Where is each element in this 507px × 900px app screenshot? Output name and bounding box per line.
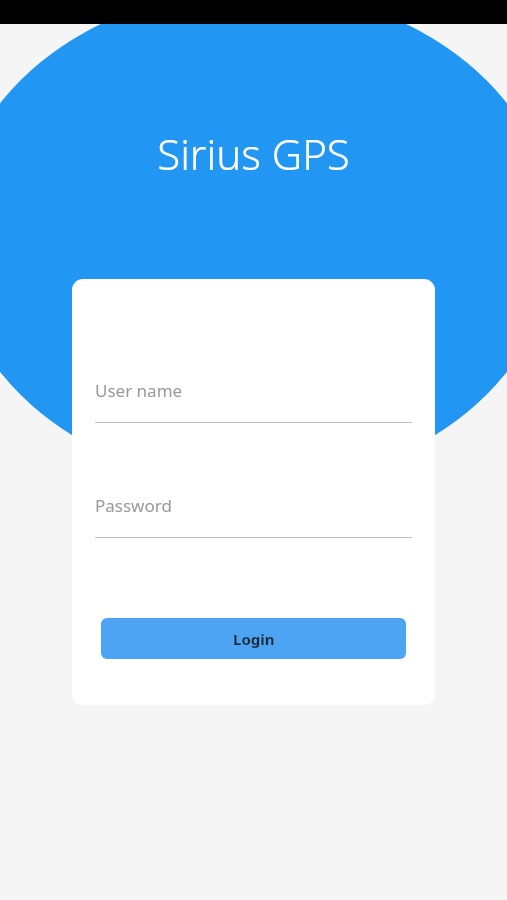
staticText: Sirius GPS <box>157 125 350 182</box>
staticText: Password <box>95 494 172 517</box>
button[interactable]: Password <box>95 494 412 550</box>
button[interactable]: User name <box>95 379 412 435</box>
button[interactable]: Login <box>101 618 406 659</box>
staticText: User name <box>95 379 183 402</box>
staticText: Login <box>233 629 275 649</box>
